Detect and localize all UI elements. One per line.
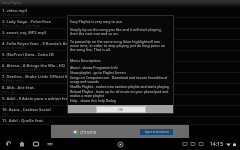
staticText: 8. Akb - Ant feat. (2, 85, 35, 90)
staticText: 2. Lady Gaga - PokerFace (2, 19, 52, 24)
staticText: music dj remixes (2, 46, 26, 50)
staticText: 7. Deeline - Shake Little Official Video (2, 74, 77, 79)
staticText: mp3 (2, 123, 9, 125)
staticText: Show playlist - go to Playlist Screen (70, 70, 126, 75)
button[interactable]: Music (189, 140, 197, 148)
staticText: 5. (NoProv) Data - Cairo III (2, 52, 54, 57)
button[interactable]: 5. (NoProv) Data - Cairo III (0, 51, 240, 62)
button[interactable]: 1. video.mp3 (0, 7, 240, 18)
staticText: Agree and continue (145, 130, 169, 134)
staticText: Simply tip on the song you like and it w… (70, 27, 170, 36)
staticText: chrome (80, 129, 97, 135)
button[interactable]: 9. Adel - 9 Adele para a adrian feat (0, 95, 240, 106)
staticText: Easy Playlist (2, 0, 22, 5)
staticText: mp3 - dj (2, 101, 14, 105)
staticText: Help - shows this help Dialog (70, 98, 116, 103)
button[interactable]: 11. Adel - Quelle feat. (0, 117, 240, 125)
button[interactable]: Agree and continue (140, 129, 173, 135)
staticText: To pause/tip on the same song (blue high… (70, 39, 170, 52)
staticText: mp3 - dj (2, 90, 14, 94)
staticText: Reload Playlist - looks up for all music… (70, 89, 170, 98)
button[interactable]: Notification (115, 139, 125, 149)
staticText: mp3 (2, 112, 9, 116)
staticText: Shuffle Playlist - makes new random play… (70, 84, 169, 89)
staticText: Menu Description: (70, 58, 101, 63)
button[interactable]: Recent apps (29, 138, 43, 150)
button[interactable]: Keyboard (43, 138, 57, 150)
staticText: 4. Sofia Reyes feat. - 9 Russia's Art Be… (2, 41, 80, 46)
staticText: Dj Remix mp3 B (2, 79, 25, 83)
staticText: Official song of Alesso MP3 (2, 68, 41, 72)
button[interactable]: 6. Alesso - A Brings the Mix - HQ (0, 62, 240, 73)
staticText: Dj Remix mp3 (2, 35, 22, 39)
staticText: 1. video.mp3 (2, 8, 28, 13)
staticText: 6. Alesso - A Brings the Mix - HQ (2, 63, 65, 68)
staticText: 11. Adel - Quelle feat. (2, 118, 45, 123)
button[interactable]: Easy Playlist (0, 0, 240, 5)
staticText: US Music4day R (2, 13, 25, 17)
staticText: Songs on Computer.com - Download and str… (70, 75, 170, 84)
button[interactable]: Wi-Fi (226, 142, 231, 147)
staticText: Ok (118, 107, 124, 112)
button[interactable]: chrome (51, 125, 189, 138)
staticText: Easy Playlist is very easy to use. (70, 19, 123, 24)
staticText: 3. sweet_noj_MP3.mp3 (2, 30, 47, 35)
button[interactable]: Battery (232, 142, 237, 147)
button[interactable]: 3. sweet_noj_MP3.mp3 (0, 29, 240, 40)
staticText: 14:13 (210, 141, 223, 148)
staticText: 9. Adel - 9 Adele para a adrian feat (2, 96, 70, 101)
button[interactable]: 2. Lady Gaga - PokerFace (0, 18, 240, 29)
button[interactable]: Back (1, 138, 15, 150)
button[interactable]: 4. Sofia Reyes feat. - 9 Russia's Art Be… (0, 40, 240, 51)
button[interactable]: Screenshot (181, 140, 189, 148)
button[interactable]: Home (15, 138, 29, 150)
staticText: About - shows Programm Info (70, 65, 118, 70)
button[interactable]: 8. Akb - Ant feat. (0, 84, 240, 95)
button[interactable]: Ok (96, 106, 146, 113)
staticText: Art Frequency MP3 full audio (2, 57, 43, 61)
button[interactable]: 7. Deeline - Shake Little Official Video (0, 73, 240, 84)
staticText: 10. Astra - Cashew Social (2, 107, 51, 112)
button[interactable]: 10. Astra - Cashew Social (0, 106, 240, 117)
staticText: Official video of Lady Gaga (2, 24, 40, 28)
button[interactable]: Sync (197, 140, 205, 148)
